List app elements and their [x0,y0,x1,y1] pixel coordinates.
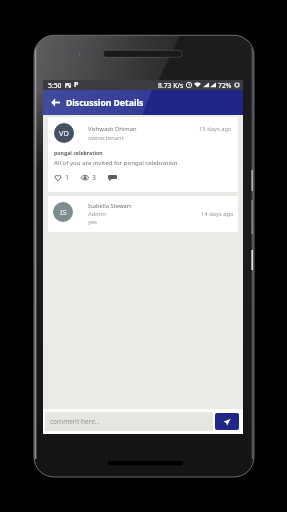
staticText: 3 [92,173,97,182]
button[interactable]: Views [81,173,97,182]
staticText: Isabella Stewart [88,202,132,210]
staticText: All of you are invited for pongal celebr… [54,158,180,166]
staticText: 8.73 K/s [158,81,184,90]
staticText: yes [88,218,98,226]
button[interactable]: VD [48,117,238,192]
staticText: Vishwash Dhiman [88,125,137,133]
staticText: 72% [218,81,232,90]
staticText: comment here... [50,417,101,426]
staticText: Discussion Details [66,97,144,109]
staticText: owner,tenant [88,134,124,142]
staticText: Admin [88,210,106,218]
staticText: 1 [65,173,70,182]
staticText: P [74,80,79,90]
staticText: VD [59,128,69,138]
button[interactable]: IS [48,196,238,232]
button[interactable]: Send [215,413,239,430]
staticText: 5:50 [48,81,62,90]
button[interactable]: comment here... [45,412,213,431]
button[interactable]: Like [54,173,70,182]
staticText: 15 days ago [199,125,232,133]
staticText: 14 days ago [201,210,234,218]
staticText: IS [60,207,67,217]
staticText: pongal celebration [54,149,103,156]
button[interactable]: Back [48,95,63,110]
button[interactable]: Comment [108,173,117,182]
